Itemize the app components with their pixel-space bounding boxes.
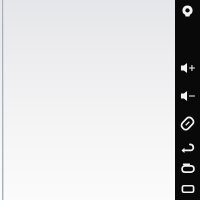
button[interactable]: Volume down — [175, 86, 200, 106]
button[interactable]: Back — [175, 139, 200, 159]
button[interactable]: Rotate screen — [175, 113, 200, 133]
button[interactable]: Overview — [175, 179, 200, 199]
button[interactable]: Volume up — [175, 58, 200, 78]
button[interactable]: Home — [175, 159, 200, 179]
button[interactable]: Take screenshot — [175, 1, 200, 21]
